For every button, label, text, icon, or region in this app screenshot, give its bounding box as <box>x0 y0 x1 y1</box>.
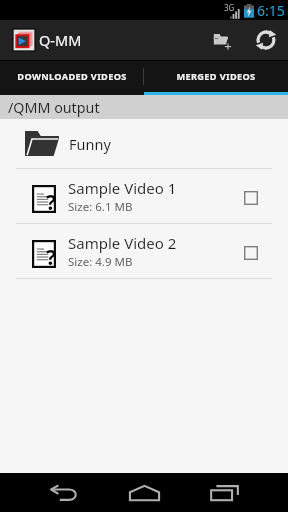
staticText: Sample Video 1 <box>68 178 177 198</box>
staticText: Funny <box>69 134 111 154</box>
staticText: DOWNLOADED VIDEOS <box>17 70 127 83</box>
button[interactable]: Funny <box>0 119 288 168</box>
staticText: Q-MM <box>39 30 82 50</box>
button[interactable]: DOWNLOADED VIDEOS <box>0 61 143 92</box>
button[interactable]: Recents <box>184 473 264 512</box>
button[interactable]: Q-MM <box>0 20 90 60</box>
button[interactable]: ? <box>0 169 288 223</box>
button[interactable]: New folder <box>200 20 244 60</box>
button[interactable]: Back <box>24 473 104 512</box>
staticText: ? <box>46 243 57 271</box>
staticText: Size: 6.1 MB <box>68 199 133 215</box>
button[interactable]: MERGED VIDEOS <box>144 61 288 92</box>
staticText: ? <box>46 188 57 216</box>
staticText: Sample Video 2 <box>68 233 177 253</box>
staticText: 3G <box>224 2 235 13</box>
staticText: MERGED VIDEOS <box>176 70 256 83</box>
button[interactable]: Select Sample Video 2 <box>233 231 269 271</box>
button[interactable]: Home <box>104 473 184 512</box>
button[interactable]: ? <box>0 224 288 278</box>
staticText: /QMM output <box>8 98 100 117</box>
staticText: Size: 4.9 MB <box>68 254 133 270</box>
button[interactable]: Select Sample Video 1 <box>233 176 269 216</box>
button[interactable]: Refresh <box>244 20 288 60</box>
staticText: 6:15 <box>257 1 285 20</box>
